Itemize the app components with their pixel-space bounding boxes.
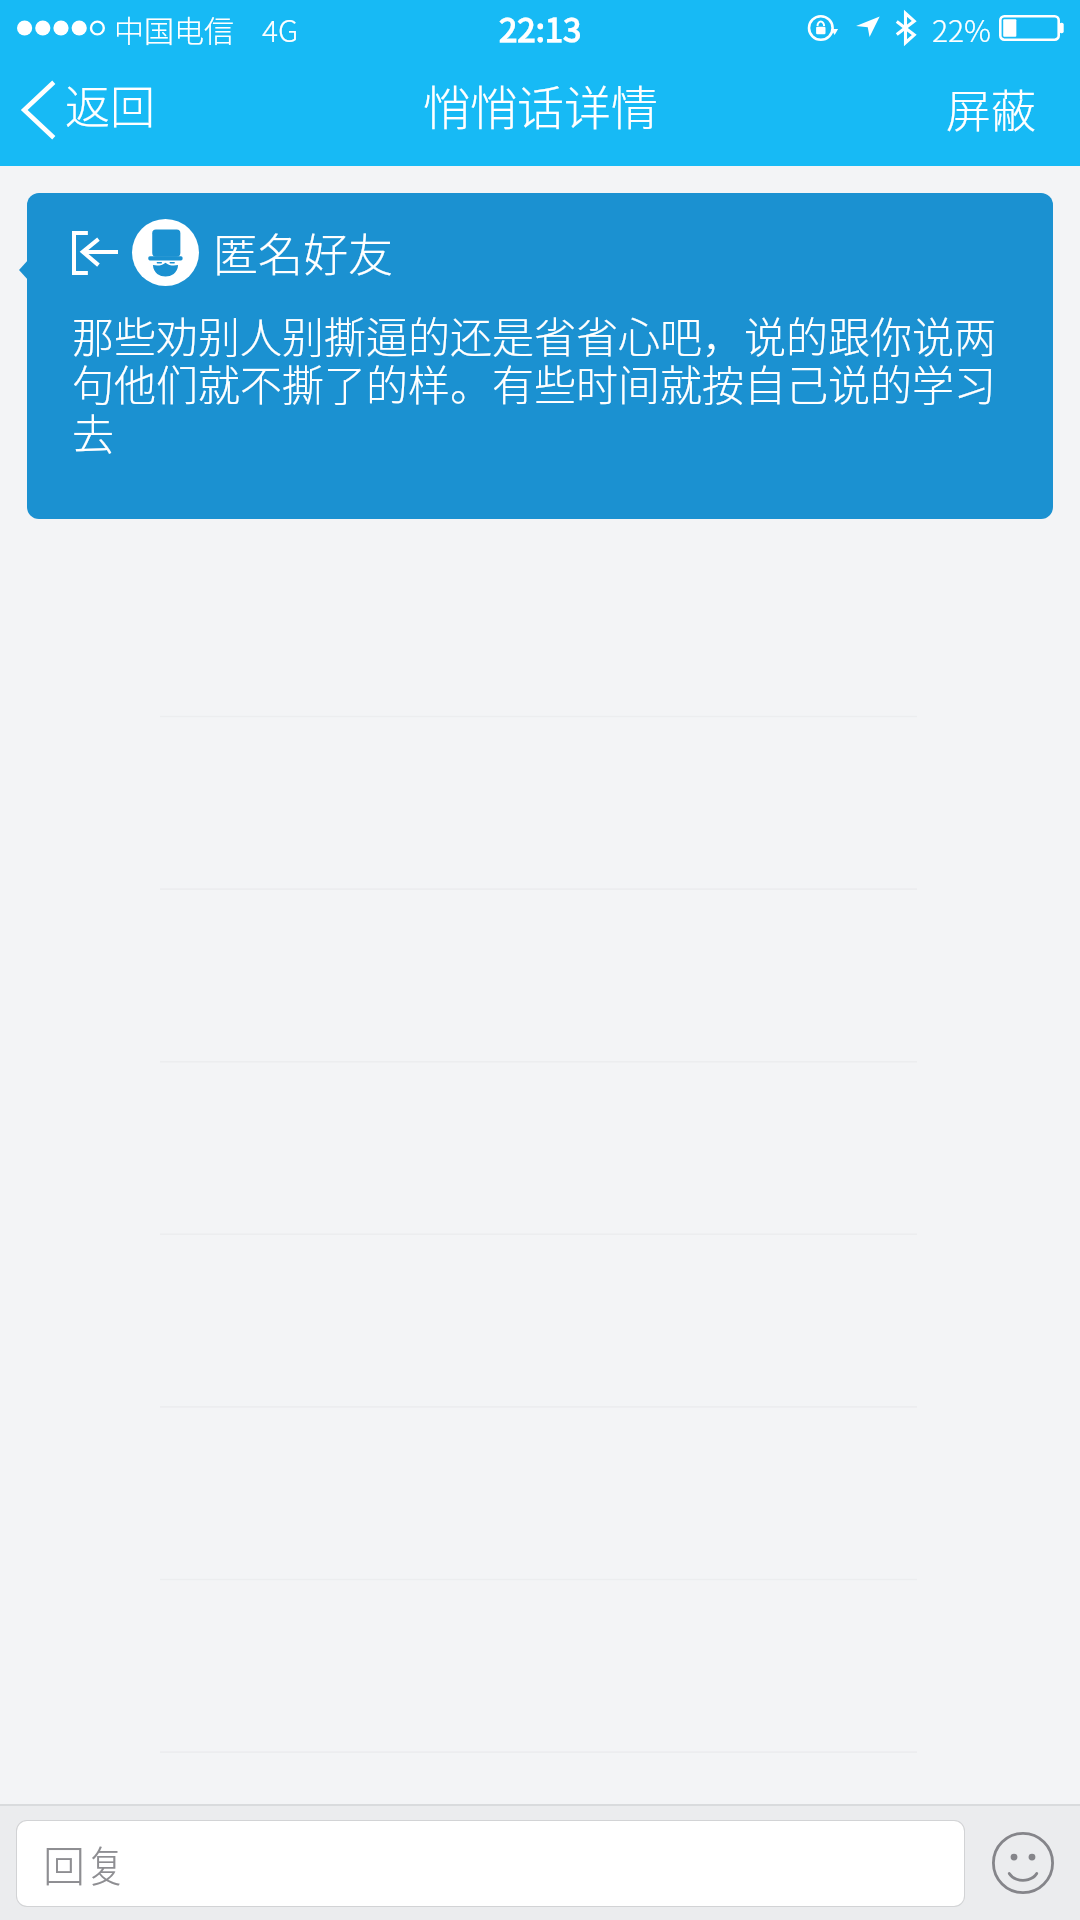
other: Anonymous message bbox=[72, 231, 118, 275]
staticText: 回复 bbox=[43, 1833, 128, 1894]
other: Location bbox=[855, 16, 881, 40]
other: Bluetooth bbox=[896, 13, 915, 43]
button[interactable]: 屏蔽 bbox=[920, 64, 1080, 159]
other: Battery 22% bbox=[999, 15, 1067, 41]
button[interactable]: Emoji bbox=[986, 1826, 1060, 1900]
button[interactable]: Anonymous message bbox=[27, 193, 1053, 519]
other: Rotation lock bbox=[808, 15, 842, 41]
button[interactable]: Back bbox=[0, 64, 178, 159]
staticText: 返回 bbox=[65, 72, 156, 137]
staticText: 那些劝别人别撕逼的还是省省心吧，说的跟你说两句他们就不撕了的样。有些时间就按自己… bbox=[72, 304, 1024, 462]
staticText: 匿名好友 bbox=[213, 220, 394, 285]
staticText: 22% bbox=[932, 7, 992, 50]
staticText: 中国电信 bbox=[114, 7, 234, 50]
staticText: 4G bbox=[262, 7, 299, 50]
button[interactable]: 回复 bbox=[17, 1821, 964, 1906]
staticText: 悄悄话详情 bbox=[423, 70, 658, 138]
staticText: 22:13 bbox=[499, 4, 582, 52]
staticText: 屏蔽 bbox=[946, 76, 1037, 141]
